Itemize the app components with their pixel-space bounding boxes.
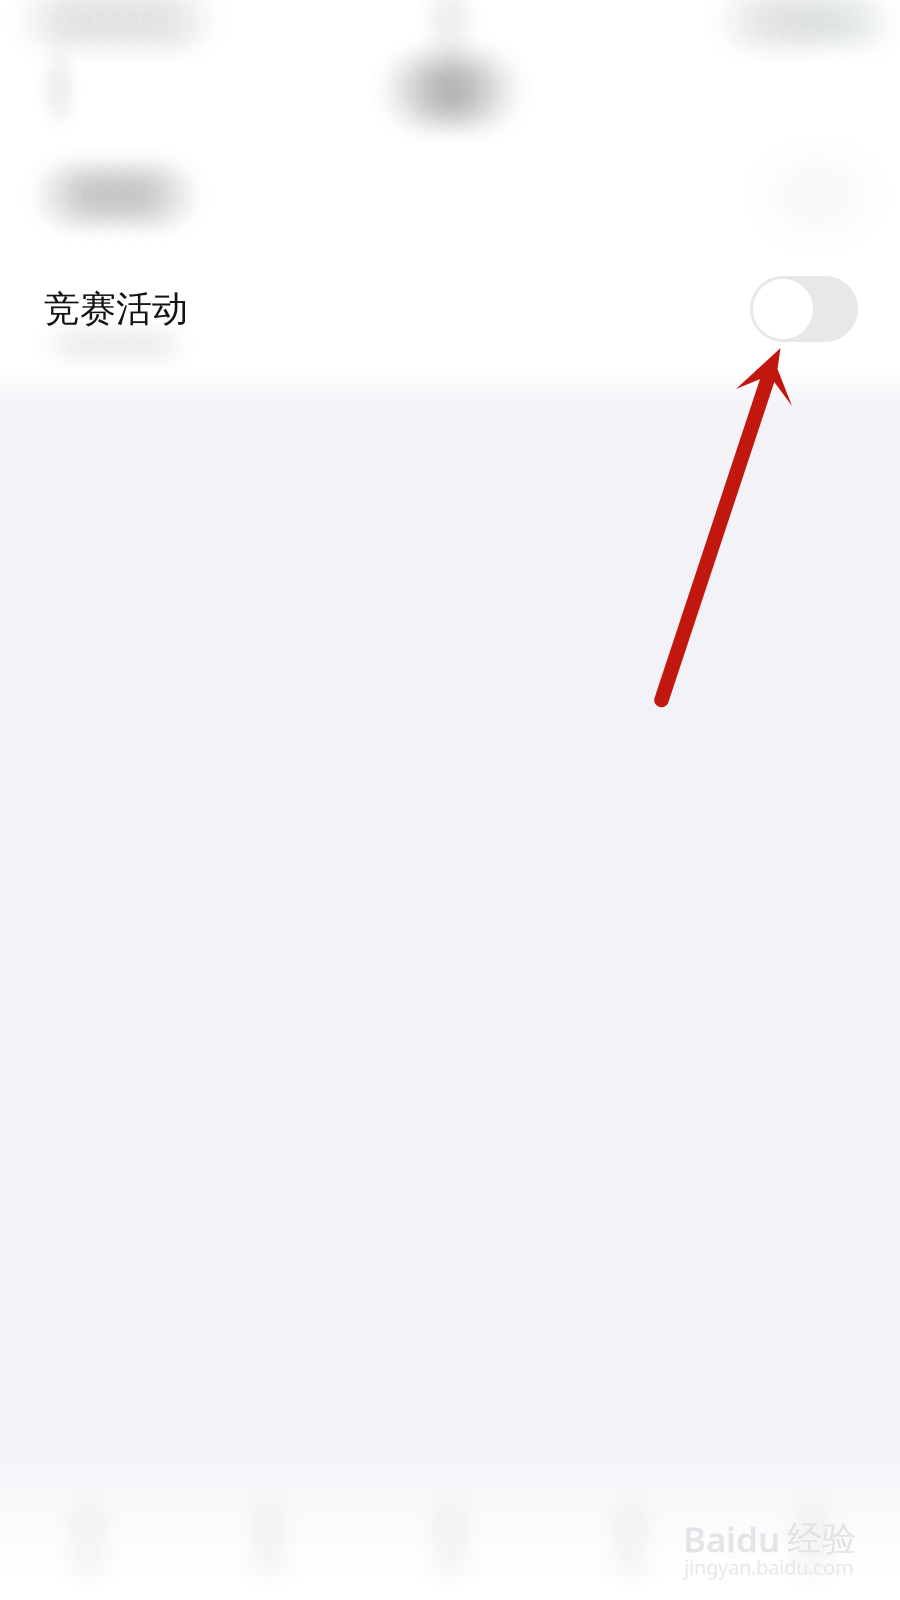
button[interactable]: Tab 3 xyxy=(360,1470,540,1600)
button[interactable]: Back xyxy=(3,36,121,140)
staticText: 竞赛活动 xyxy=(44,287,188,331)
button[interactable]: 竞赛活动 xyxy=(0,253,900,365)
button[interactable]: Settings row xyxy=(0,139,900,251)
staticText: Baidu xyxy=(683,1516,780,1562)
button[interactable]: Tab 1 xyxy=(0,1470,180,1600)
button[interactable]: Tab 2 xyxy=(180,1470,360,1600)
button[interactable]: Tab 5 xyxy=(720,1470,900,1600)
staticText: 经验 xyxy=(787,1518,857,1560)
staticText: jingyan.baidu.com xyxy=(684,1554,854,1580)
button[interactable]: Tab 4 xyxy=(540,1470,720,1600)
